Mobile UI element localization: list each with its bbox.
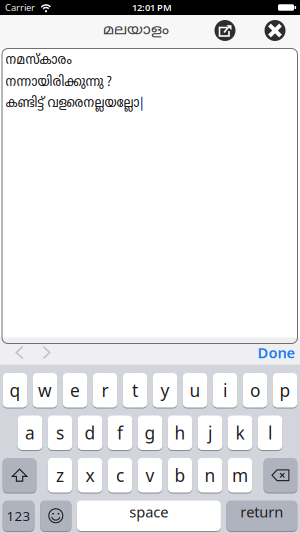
button[interactable]: s [48,415,72,450]
staticText: x [85,464,94,487]
button[interactable]: m [228,457,252,493]
staticText: നന്നായിരിക്കുന്നു ? [5,74,111,91]
staticText: കണ്ടിട്ട് വളരെനല്ലയല്ലോ [5,95,139,112]
staticText: Carrier [5,1,35,14]
staticText: മലയാളം [103,21,169,40]
staticText: c [116,464,124,487]
staticText: s [56,421,64,444]
button[interactable]: c [108,457,132,493]
staticText: 12:01 PM [132,1,172,14]
staticText: Done [257,343,295,362]
staticText: z [56,464,64,487]
button[interactable]: 123 [3,500,34,531]
button[interactable] [42,345,51,359]
button[interactable]: space [77,500,221,531]
button[interactable]: y [153,372,177,408]
button[interactable]: u [183,372,207,408]
button[interactable]: a [18,415,42,450]
staticText: i [223,379,227,402]
button[interactable]: w [33,372,57,408]
button[interactable]: Done [257,343,295,362]
staticText: v [145,464,154,487]
staticText: b [174,464,185,487]
staticText: w [38,379,52,402]
button[interactable]: o [243,372,267,408]
button[interactable]: q [3,372,27,408]
button[interactable]: l [258,415,282,450]
button[interactable]: b [168,457,192,493]
staticText: l [268,421,272,444]
staticText: നമസ്കാരം [5,52,71,69]
staticText: return [240,502,283,521]
staticText: 123 [7,507,31,525]
button[interactable]: v [138,457,162,493]
button[interactable]: r [93,372,117,408]
button[interactable]: d [78,415,102,450]
button[interactable] [264,20,285,41]
staticText: h [174,421,185,444]
staticText: q [9,379,20,402]
button[interactable]: t [123,372,147,408]
button[interactable] [40,500,71,531]
staticText: n [204,464,215,487]
staticText: m [232,464,248,487]
button[interactable]: i [213,372,237,408]
button[interactable]: return [226,500,297,531]
button[interactable]: g [138,415,162,450]
button[interactable]: e [63,372,87,408]
button[interactable] [214,20,235,41]
staticText: space [129,502,168,521]
button[interactable]: k [228,415,252,450]
staticText: j [208,421,212,444]
button[interactable]: p [273,372,297,408]
staticText: p [279,379,290,402]
button[interactable]: f [108,415,132,450]
button[interactable]: x [78,457,102,493]
staticText: d [84,421,95,444]
staticText: a [25,421,35,444]
staticText: y [160,379,169,402]
staticText: e [70,379,80,402]
staticText: g [144,421,155,444]
staticText: t [132,379,138,402]
button[interactable]: j [198,415,222,450]
button[interactable] [15,345,24,359]
button[interactable]: z [48,457,72,493]
staticText: u [189,379,200,402]
staticText: f [117,421,123,444]
button[interactable]: n [198,457,222,493]
staticText: o [250,379,260,402]
staticText: k [235,421,244,444]
button[interactable] [264,457,297,493]
button[interactable] [3,457,36,493]
button[interactable]: h [168,415,192,450]
staticText: r [101,379,108,402]
